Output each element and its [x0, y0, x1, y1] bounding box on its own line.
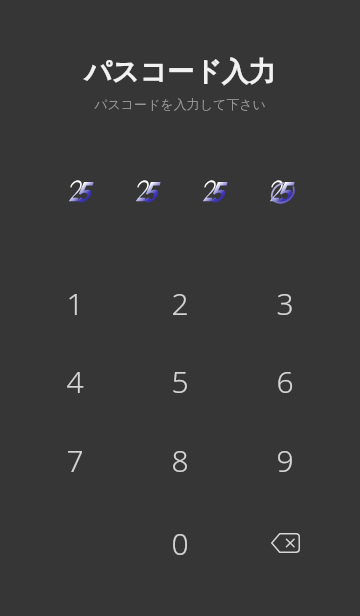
staticText: 8: [171, 440, 189, 481]
staticText: 2: [171, 283, 189, 324]
button[interactable]: 7: [27, 425, 123, 495]
staticText: 6: [276, 361, 294, 402]
button[interactable]: 3: [237, 268, 333, 338]
button[interactable]: 5: [132, 346, 228, 416]
button[interactable]: 9: [237, 425, 333, 495]
button[interactable]: 0: [132, 508, 228, 578]
staticText: 4: [66, 361, 84, 402]
staticText: パスコード入力: [84, 55, 276, 89]
staticText: 5: [171, 361, 189, 402]
staticText: 3: [276, 283, 294, 324]
staticText: 9: [276, 440, 294, 481]
button[interactable]: Delete: [237, 508, 333, 578]
staticText: 0: [171, 523, 189, 564]
staticText: パスコードを入力して下さい: [94, 96, 266, 112]
button[interactable]: 6: [237, 346, 333, 416]
staticText: 7: [66, 440, 84, 481]
button[interactable]: 1: [27, 268, 123, 338]
button[interactable]: 4: [27, 346, 123, 416]
button[interactable]: 8: [132, 425, 228, 495]
staticText: 1: [66, 283, 84, 324]
button[interactable]: 2: [132, 268, 228, 338]
